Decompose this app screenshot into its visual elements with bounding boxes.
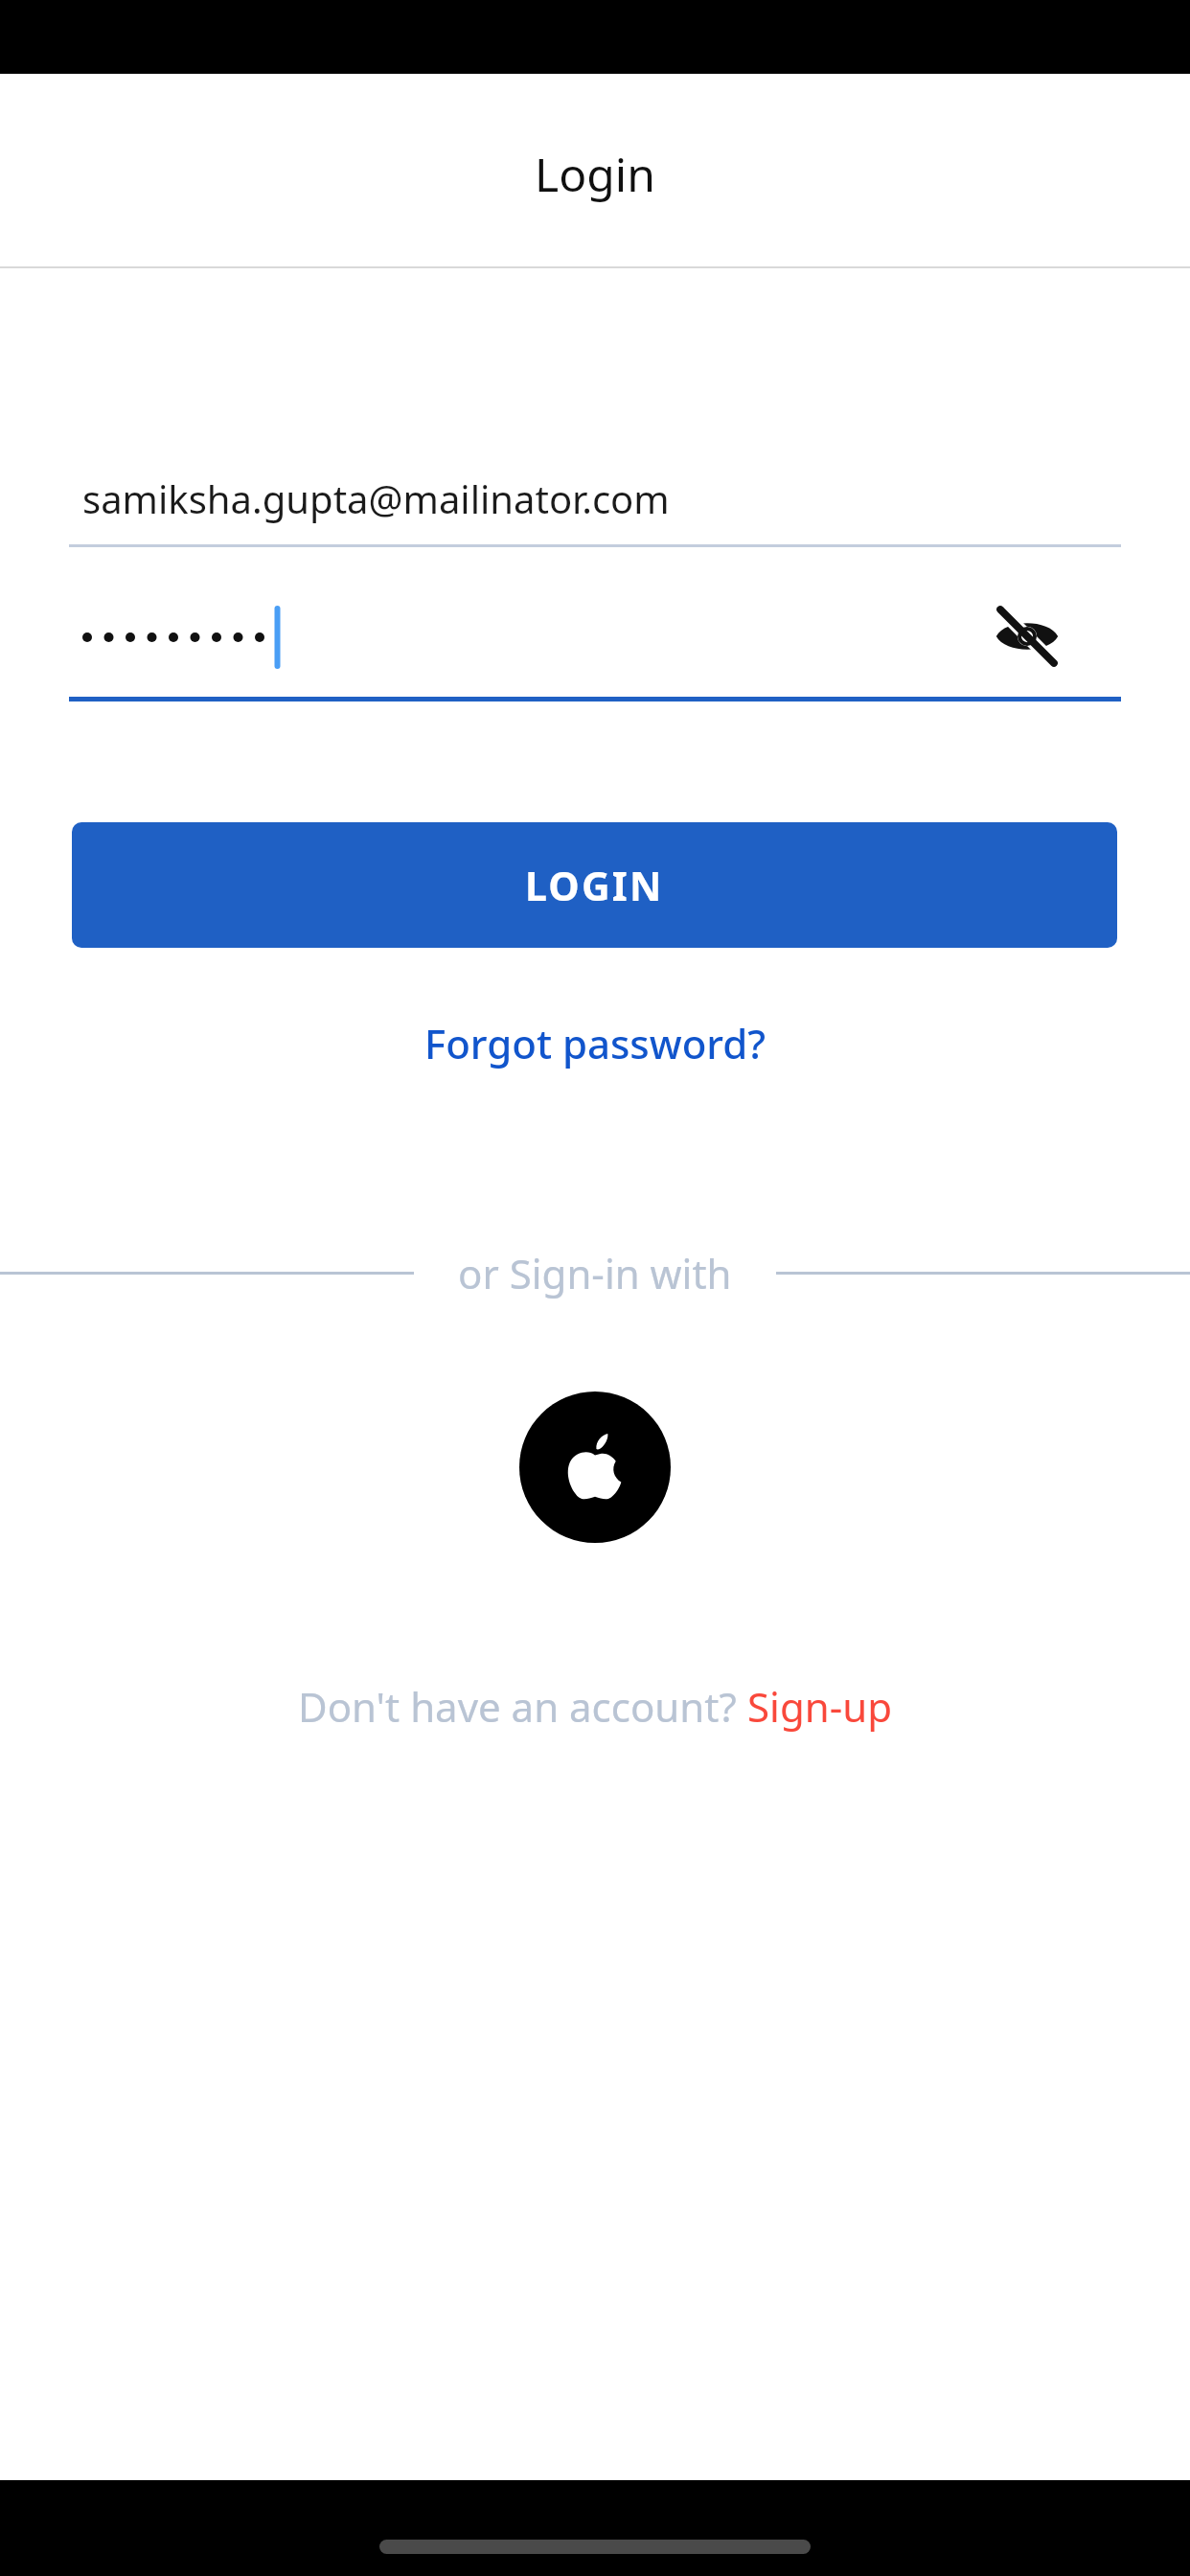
button[interactable]: Sign-up — [747, 1679, 892, 1734]
staticText: Login — [535, 143, 655, 205]
button[interactable]: samiksha.gupta@mailinator.com — [69, 461, 1121, 547]
button[interactable]: Sign in with Apple — [519, 1391, 671, 1543]
staticText: Sign-up — [747, 1679, 892, 1734]
staticText: LOGIN — [525, 859, 664, 912]
staticText: Forgot password? — [424, 1016, 767, 1070]
button[interactable]: Hide password — [69, 585, 1121, 701]
staticText: samiksha.gupta@mailinator.com — [82, 472, 670, 524]
staticText: or Sign-in with — [458, 1246, 732, 1300]
button[interactable]: Forgot password? — [405, 1002, 786, 1084]
staticText: Don't have an account? — [298, 1679, 747, 1734]
button[interactable]: LOGIN — [72, 822, 1117, 948]
button[interactable]: Hide password — [981, 590, 1073, 682]
